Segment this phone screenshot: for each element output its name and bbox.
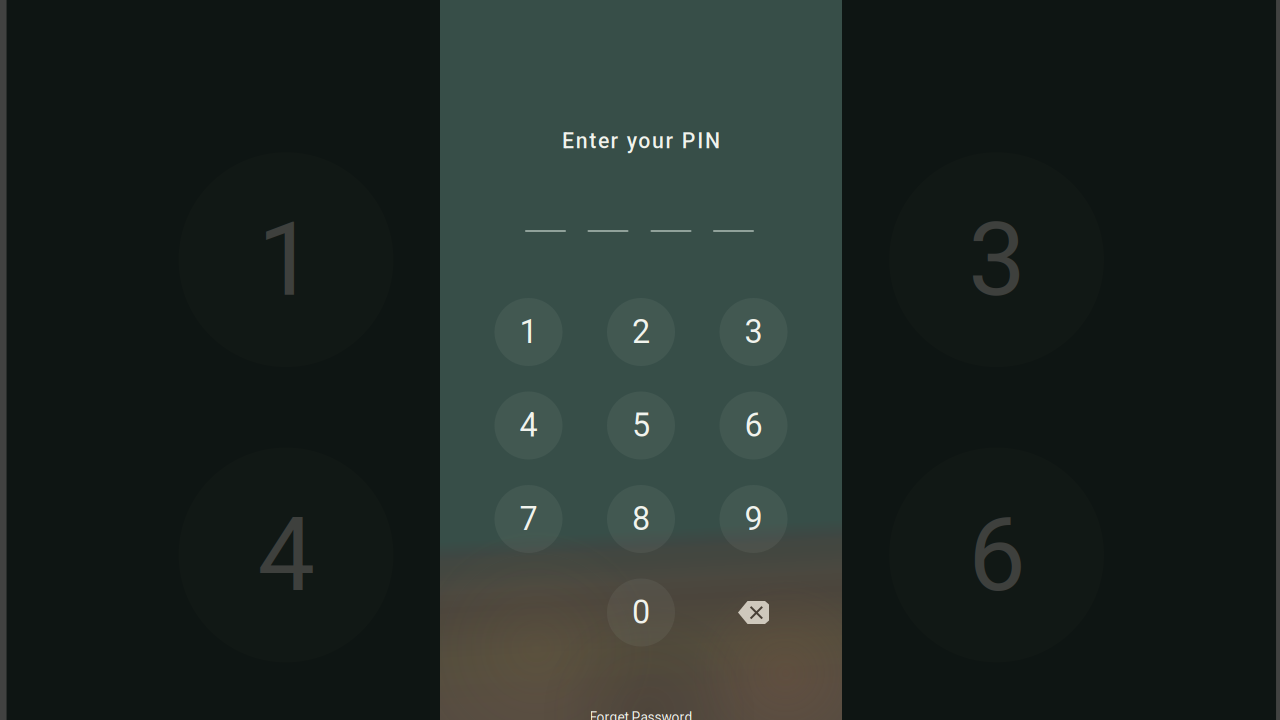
staticText: 7: [520, 488, 538, 526]
staticText: Enter your PIN: [562, 128, 720, 153]
button[interactable]: 6: [720, 380, 788, 448]
button[interactable]: 0: [607, 578, 675, 646]
staticText: Forget Password: [589, 709, 692, 720]
button[interactable]: 9: [719, 485, 787, 553]
staticText: 1: [519, 313, 537, 351]
staticText: 6: [744, 406, 762, 444]
button[interactable]: 2: [607, 286, 675, 354]
staticText: 7: [519, 500, 537, 538]
staticText: Enter your PIN: [562, 117, 720, 142]
button[interactable]: 5: [607, 380, 675, 448]
staticText: 2: [632, 313, 650, 351]
button[interactable]: 1: [494, 298, 562, 366]
button[interactable]: 0: [607, 567, 675, 635]
staticText: 6: [745, 395, 763, 433]
staticText: 3: [744, 313, 762, 351]
button[interactable]: 3: [719, 298, 787, 366]
button[interactable]: 9: [720, 473, 788, 541]
button[interactable]: 6: [719, 391, 787, 459]
button[interactable]: 5: [607, 391, 675, 459]
button[interactable]: 7: [495, 473, 563, 541]
staticText: 1: [520, 301, 538, 339]
staticText: 5: [632, 406, 650, 444]
button[interactable]: Delete: [719, 578, 787, 646]
button[interactable]: 7: [494, 485, 562, 553]
button[interactable]: 8: [607, 473, 675, 541]
button[interactable]: 4: [494, 391, 562, 459]
staticText: 9: [744, 500, 762, 538]
staticText: 9: [745, 488, 763, 526]
button[interactable]: 4: [495, 380, 563, 448]
staticText: 0: [632, 582, 650, 620]
button[interactable]: Forget Password: [589, 709, 692, 720]
button[interactable]: Forget Password: [590, 698, 693, 714]
button[interactable]: 8: [607, 485, 675, 553]
staticText: 4: [520, 395, 538, 433]
button[interactable]: 1: [495, 286, 563, 354]
staticText: 8: [632, 500, 650, 538]
button[interactable]: Delete: [720, 567, 788, 635]
staticText: 0: [632, 593, 650, 631]
staticText: 5: [632, 395, 650, 433]
staticText: 2: [632, 301, 650, 339]
button[interactable]: 3: [720, 286, 788, 354]
staticText: 8: [632, 488, 650, 526]
button[interactable]: 2: [607, 298, 675, 366]
staticText: 4: [519, 406, 537, 444]
staticText: 3: [745, 301, 763, 339]
staticText: Forget Password: [590, 698, 693, 714]
